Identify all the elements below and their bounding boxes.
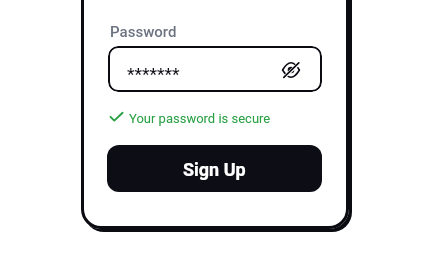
button[interactable]: Sign Up [107,145,322,192]
button[interactable]: ******* [108,46,322,92]
staticText: ******* [127,65,180,84]
staticText: Password [110,23,177,41]
button[interactable] [282,61,300,79]
staticText: Sign Up [183,159,246,180]
staticText: Your password is secure [129,111,271,126]
